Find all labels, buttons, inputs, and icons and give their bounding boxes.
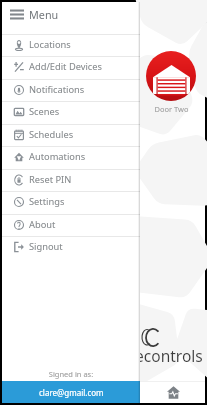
button[interactable]: Door Two — [146, 51, 196, 101]
button[interactable]: Locations — [2, 34, 140, 56]
button[interactable]: Automations — [2, 146, 140, 168]
staticText: Scenes — [29, 105, 60, 118]
button[interactable]: Add/Edit Devices — [2, 56, 140, 78]
staticText: Reset PIN — [29, 173, 72, 186]
button[interactable]: Schedules — [2, 124, 140, 146]
staticText: Add/Edit Devices — [29, 60, 103, 73]
staticText: About — [29, 218, 56, 231]
button[interactable]: About — [2, 214, 140, 236]
staticText: recontrols — [129, 345, 203, 366]
button[interactable]: Scenes — [2, 101, 140, 123]
staticText: Signout — [29, 240, 63, 253]
button[interactable]: Reset PIN — [2, 169, 140, 191]
staticText: clare@gmail.com — [39, 387, 104, 398]
button[interactable]: Notifications — [2, 79, 140, 101]
button[interactable]: Home — [162, 381, 184, 403]
other: Open menu — [2, 9, 29, 20]
button[interactable]: Signout — [2, 236, 140, 258]
button[interactable]: Settings — [2, 191, 140, 213]
staticText: Signed in as: — [2, 369, 140, 379]
staticText: Notifications — [29, 83, 85, 96]
staticText: Schedules — [29, 128, 74, 141]
button[interactable]: Open menu — [2, 2, 140, 27]
staticText: Automations — [29, 150, 86, 163]
staticText: Door Two — [154, 104, 189, 114]
button[interactable]: clare@gmail.com — [2, 381, 140, 403]
staticText: Settings — [29, 195, 65, 208]
staticText: Locations — [29, 38, 71, 51]
staticText: Menu — [29, 7, 59, 22]
